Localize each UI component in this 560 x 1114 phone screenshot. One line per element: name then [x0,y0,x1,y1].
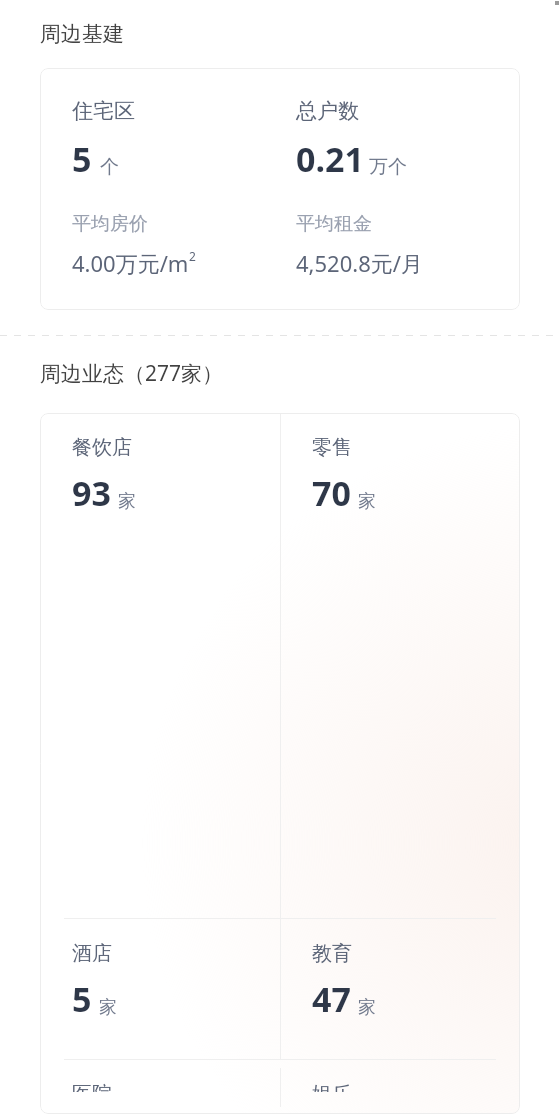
staticText: 4,520.8元/月 [296,248,423,278]
staticText: 5 [72,136,92,182]
staticText: 娱乐 [312,1082,352,1092]
staticText: 家 [358,490,376,513]
staticText: 平均租金 [296,212,372,236]
staticText: 4.00万元/m [72,248,189,278]
staticText: 5 [72,976,92,1022]
staticText: 47 [312,976,351,1022]
button[interactable]: 酒店 [40,919,280,1044]
staticText: 周边业态（277家） [40,359,224,388]
staticText: 万个 [369,155,407,179]
staticText: 2 [189,248,196,264]
staticText: 零售 [312,435,352,460]
button[interactable]: 教育 [280,919,520,1044]
staticText: 家 [118,490,136,513]
staticText: 个 [100,155,119,179]
staticText: 家 [99,996,117,1019]
button[interactable]: 零售 [280,413,520,538]
staticText: 总户数 [296,98,359,124]
staticText: 住宅区 [72,98,135,124]
staticText: 医院 [72,1082,112,1092]
button[interactable]: 医院 [40,1060,280,1114]
button[interactable]: 娱乐 [280,1060,520,1114]
staticText: 平均房价 [72,212,148,236]
button[interactable]: 餐饮店 [40,413,280,538]
staticText: 70 [312,470,351,516]
staticText: 酒店 [72,941,112,966]
staticText: 93 [72,470,111,516]
staticText: 家 [358,996,376,1019]
staticText: 0.21 [296,136,364,182]
staticText: 周边基建 [40,21,124,47]
staticText: 教育 [312,941,352,966]
button[interactable]: 住宅区 [40,68,520,310]
staticText: 餐饮店 [72,435,132,460]
